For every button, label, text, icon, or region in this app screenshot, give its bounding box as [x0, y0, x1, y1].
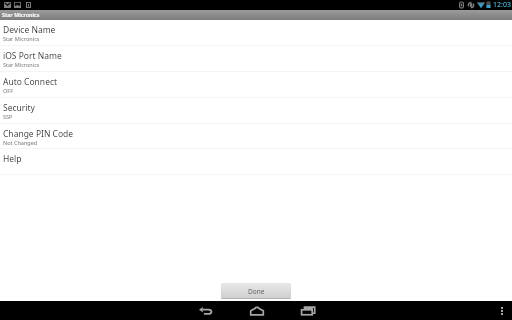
staticText: Star Micronics [2, 11, 40, 18]
staticText: Star Micronics [3, 35, 40, 42]
button[interactable]: More options [492, 301, 512, 320]
staticText: Help [3, 153, 22, 165]
button[interactable]: Home [240, 301, 274, 320]
button[interactable]: Auto Connect [0, 72, 512, 98]
button[interactable]: iOS Port Name [0, 46, 512, 72]
button[interactable]: Device Name [0, 20, 512, 46]
button[interactable]: Done [221, 283, 291, 299]
button[interactable]: Security [0, 98, 512, 124]
staticText: Change PIN Code [3, 128, 74, 140]
button[interactable]: Recent apps [291, 301, 325, 320]
staticText: Security [3, 102, 35, 114]
staticText: Not Changed [3, 139, 38, 146]
button[interactable]: Back [188, 301, 222, 320]
staticText: iOS Port Name [3, 50, 62, 62]
staticText: Star Micronics [3, 61, 40, 68]
button[interactable]: Change PIN Code [0, 124, 512, 149]
staticText: Auto Connect [3, 76, 58, 88]
button[interactable]: Help [0, 149, 512, 175]
staticText: 12:03 [493, 0, 511, 10]
staticText: OFF [3, 87, 14, 94]
staticText: Done [248, 287, 265, 296]
staticText: SSP [3, 113, 13, 120]
staticText: Device Name [3, 24, 56, 36]
